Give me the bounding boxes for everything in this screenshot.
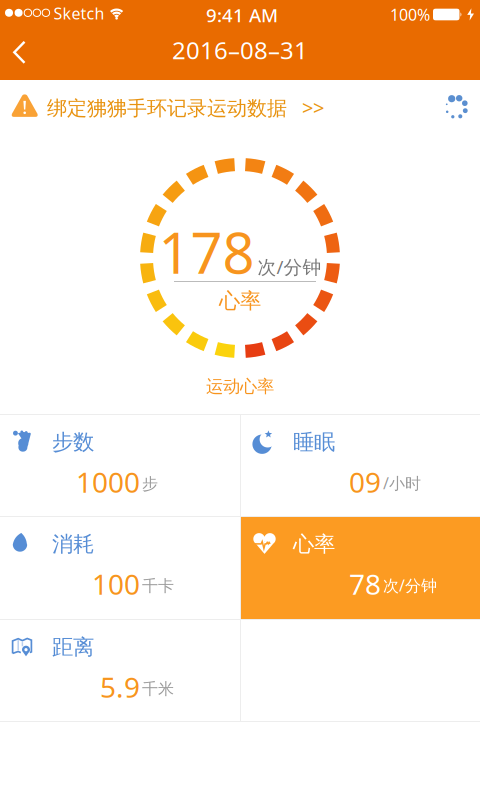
- staticText: 09: [349, 463, 381, 500]
- staticText: 100: [92, 565, 140, 602]
- staticText: 步数: [52, 429, 94, 455]
- staticText: 步: [142, 474, 158, 494]
- staticText: 绑定狒狒手环记录运动数据 >>: [47, 94, 324, 121]
- button[interactable]: 消耗: [0, 517, 240, 619]
- button[interactable]: 心率: [241, 517, 480, 619]
- staticText: 9:41 AM: [206, 3, 278, 27]
- staticText: 178: [158, 215, 254, 289]
- staticText: 心率: [219, 288, 261, 314]
- staticText: 100%: [390, 4, 430, 25]
- staticText: 心率: [293, 531, 335, 557]
- staticText: /小时: [383, 472, 421, 493]
- button[interactable]: 距离: [0, 620, 240, 721]
- staticText: 次/分钟: [257, 254, 321, 279]
- button[interactable]: 绑定狒狒手环记录运动数据 >>: [0, 80, 480, 135]
- button[interactable]: 步数: [0, 415, 240, 516]
- staticText: 2016–08–31: [172, 34, 308, 66]
- staticText: 距离: [52, 634, 94, 660]
- staticText: 消耗: [52, 531, 94, 557]
- staticText: 睡眠: [293, 429, 335, 455]
- button[interactable]: Back: [0, 28, 26, 76]
- staticText: 运动心率: [206, 376, 274, 397]
- staticText: 5.9: [100, 668, 140, 705]
- staticText: 千卡: [142, 576, 174, 596]
- staticText: 次/分钟: [383, 575, 437, 596]
- staticText: Sketch: [54, 3, 105, 24]
- button[interactable]: 睡眠: [241, 415, 480, 516]
- staticText: 千米: [142, 679, 174, 699]
- staticText: 78: [349, 565, 381, 602]
- staticText: 1000: [76, 463, 140, 500]
